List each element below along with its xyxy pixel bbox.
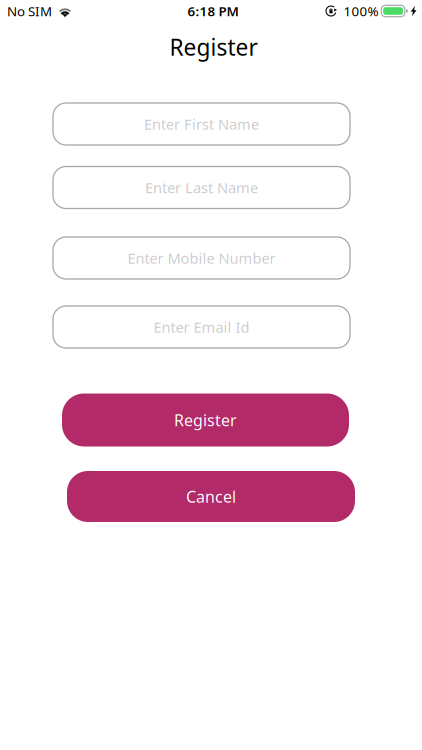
staticText: Enter Last Name	[145, 178, 258, 197]
staticText: Enter Mobile Number	[127, 248, 275, 268]
button[interactable]: Cancel	[67, 471, 355, 522]
button[interactable]: Enter Last Name	[53, 166, 350, 208]
staticText: Enter Email Id	[153, 317, 249, 337]
staticText: Cancel	[186, 486, 236, 507]
staticText: Enter First Name	[144, 114, 259, 134]
staticText: 100%	[343, 2, 378, 20]
button[interactable]: Enter Email Id	[53, 306, 350, 348]
staticText: Register	[174, 409, 237, 431]
staticText: Register	[169, 32, 257, 62]
button[interactable]: Enter Mobile Number	[53, 237, 350, 279]
button[interactable]: Register	[62, 393, 349, 446]
button[interactable]: Enter First Name	[53, 103, 350, 145]
staticText: No SIM	[7, 2, 52, 20]
staticText: 6:18 PM	[187, 2, 238, 20]
